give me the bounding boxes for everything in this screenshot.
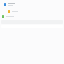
button[interactable]: Highlighted item (0, 9, 64, 13)
other: Highlighted item (8, 10, 10, 13)
button[interactable]: Active item (0, 14, 64, 18)
other: Item icon (4, 3, 6, 6)
other: Active item (2, 15, 4, 18)
button[interactable]: Item icon (0, 2, 64, 7)
